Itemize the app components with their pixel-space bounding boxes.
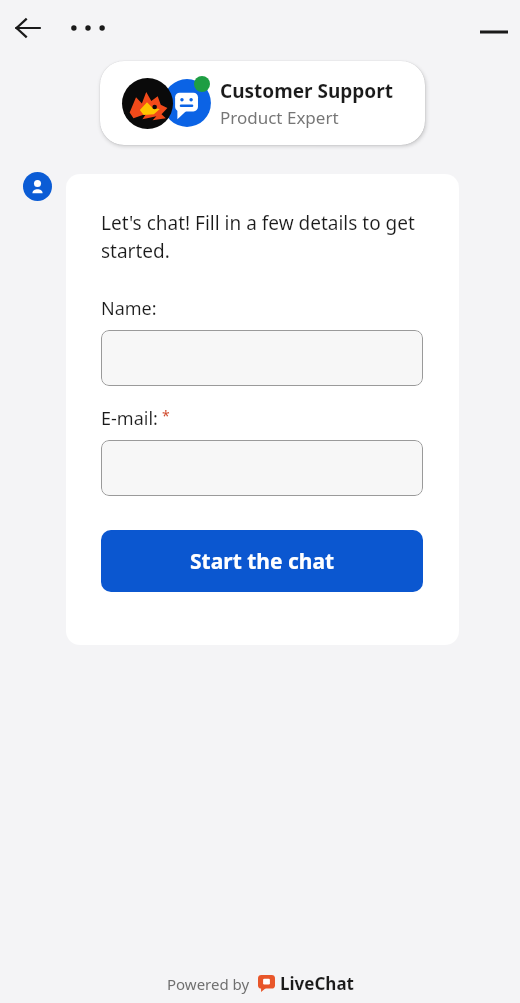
button[interactable]: Back <box>8 8 48 48</box>
staticText: Start the chat <box>190 547 335 576</box>
button[interactable]: Minimize <box>472 12 516 52</box>
staticText: Powered by <box>167 974 250 994</box>
staticText: Customer Support <box>220 78 393 104</box>
staticText: * <box>162 406 170 425</box>
button[interactable]: Powered by <box>167 972 354 995</box>
staticText: Name: <box>101 296 157 321</box>
button[interactable] <box>101 330 423 386</box>
staticText: Let's chat! Fill in a few details to get… <box>101 210 429 264</box>
button[interactable]: More options <box>66 8 110 48</box>
staticText: Product Expert <box>220 106 339 129</box>
staticText: E-mail: <box>101 406 158 431</box>
button[interactable]: Start the chat <box>101 530 423 592</box>
staticText: LiveChat <box>280 972 354 995</box>
button[interactable] <box>101 440 423 496</box>
button[interactable]: Customer Support <box>100 61 425 145</box>
